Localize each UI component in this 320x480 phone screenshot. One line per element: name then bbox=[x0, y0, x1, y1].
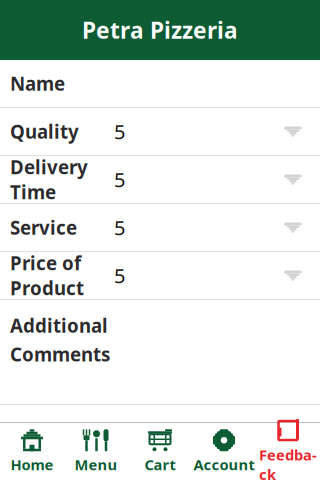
staticText: 5 bbox=[114, 262, 125, 289]
staticText: Feedback bbox=[259, 445, 317, 480]
staticText: Service bbox=[10, 215, 77, 240]
staticText: Home bbox=[10, 455, 53, 474]
button[interactable]: Delivery Time bbox=[0, 156, 320, 204]
staticText: 5 bbox=[114, 214, 125, 241]
button[interactable]: Service bbox=[0, 204, 320, 252]
staticText: Delivery Time bbox=[10, 155, 88, 204]
staticText: Account bbox=[193, 455, 254, 474]
button[interactable]: Menu bbox=[64, 423, 128, 479]
button[interactable]: Account bbox=[192, 423, 256, 479]
button[interactable]: Feedback bbox=[256, 423, 320, 479]
staticText: Additional bbox=[10, 313, 108, 338]
button[interactable]: Price of Product bbox=[0, 252, 320, 300]
staticText: Quality bbox=[10, 119, 79, 144]
button[interactable]: Home bbox=[0, 423, 64, 479]
staticText: 5 bbox=[114, 118, 125, 145]
button[interactable]: Cart bbox=[128, 423, 192, 479]
staticText: Petra Pizzeria bbox=[82, 15, 238, 45]
staticText: Menu bbox=[74, 455, 117, 474]
button[interactable]: Quality bbox=[0, 108, 320, 156]
staticText: Cart bbox=[144, 455, 175, 474]
staticText: Price of Product bbox=[10, 251, 84, 300]
staticText: 5 bbox=[114, 166, 125, 193]
staticText: Name bbox=[10, 71, 65, 96]
staticText: Comments bbox=[10, 342, 110, 367]
